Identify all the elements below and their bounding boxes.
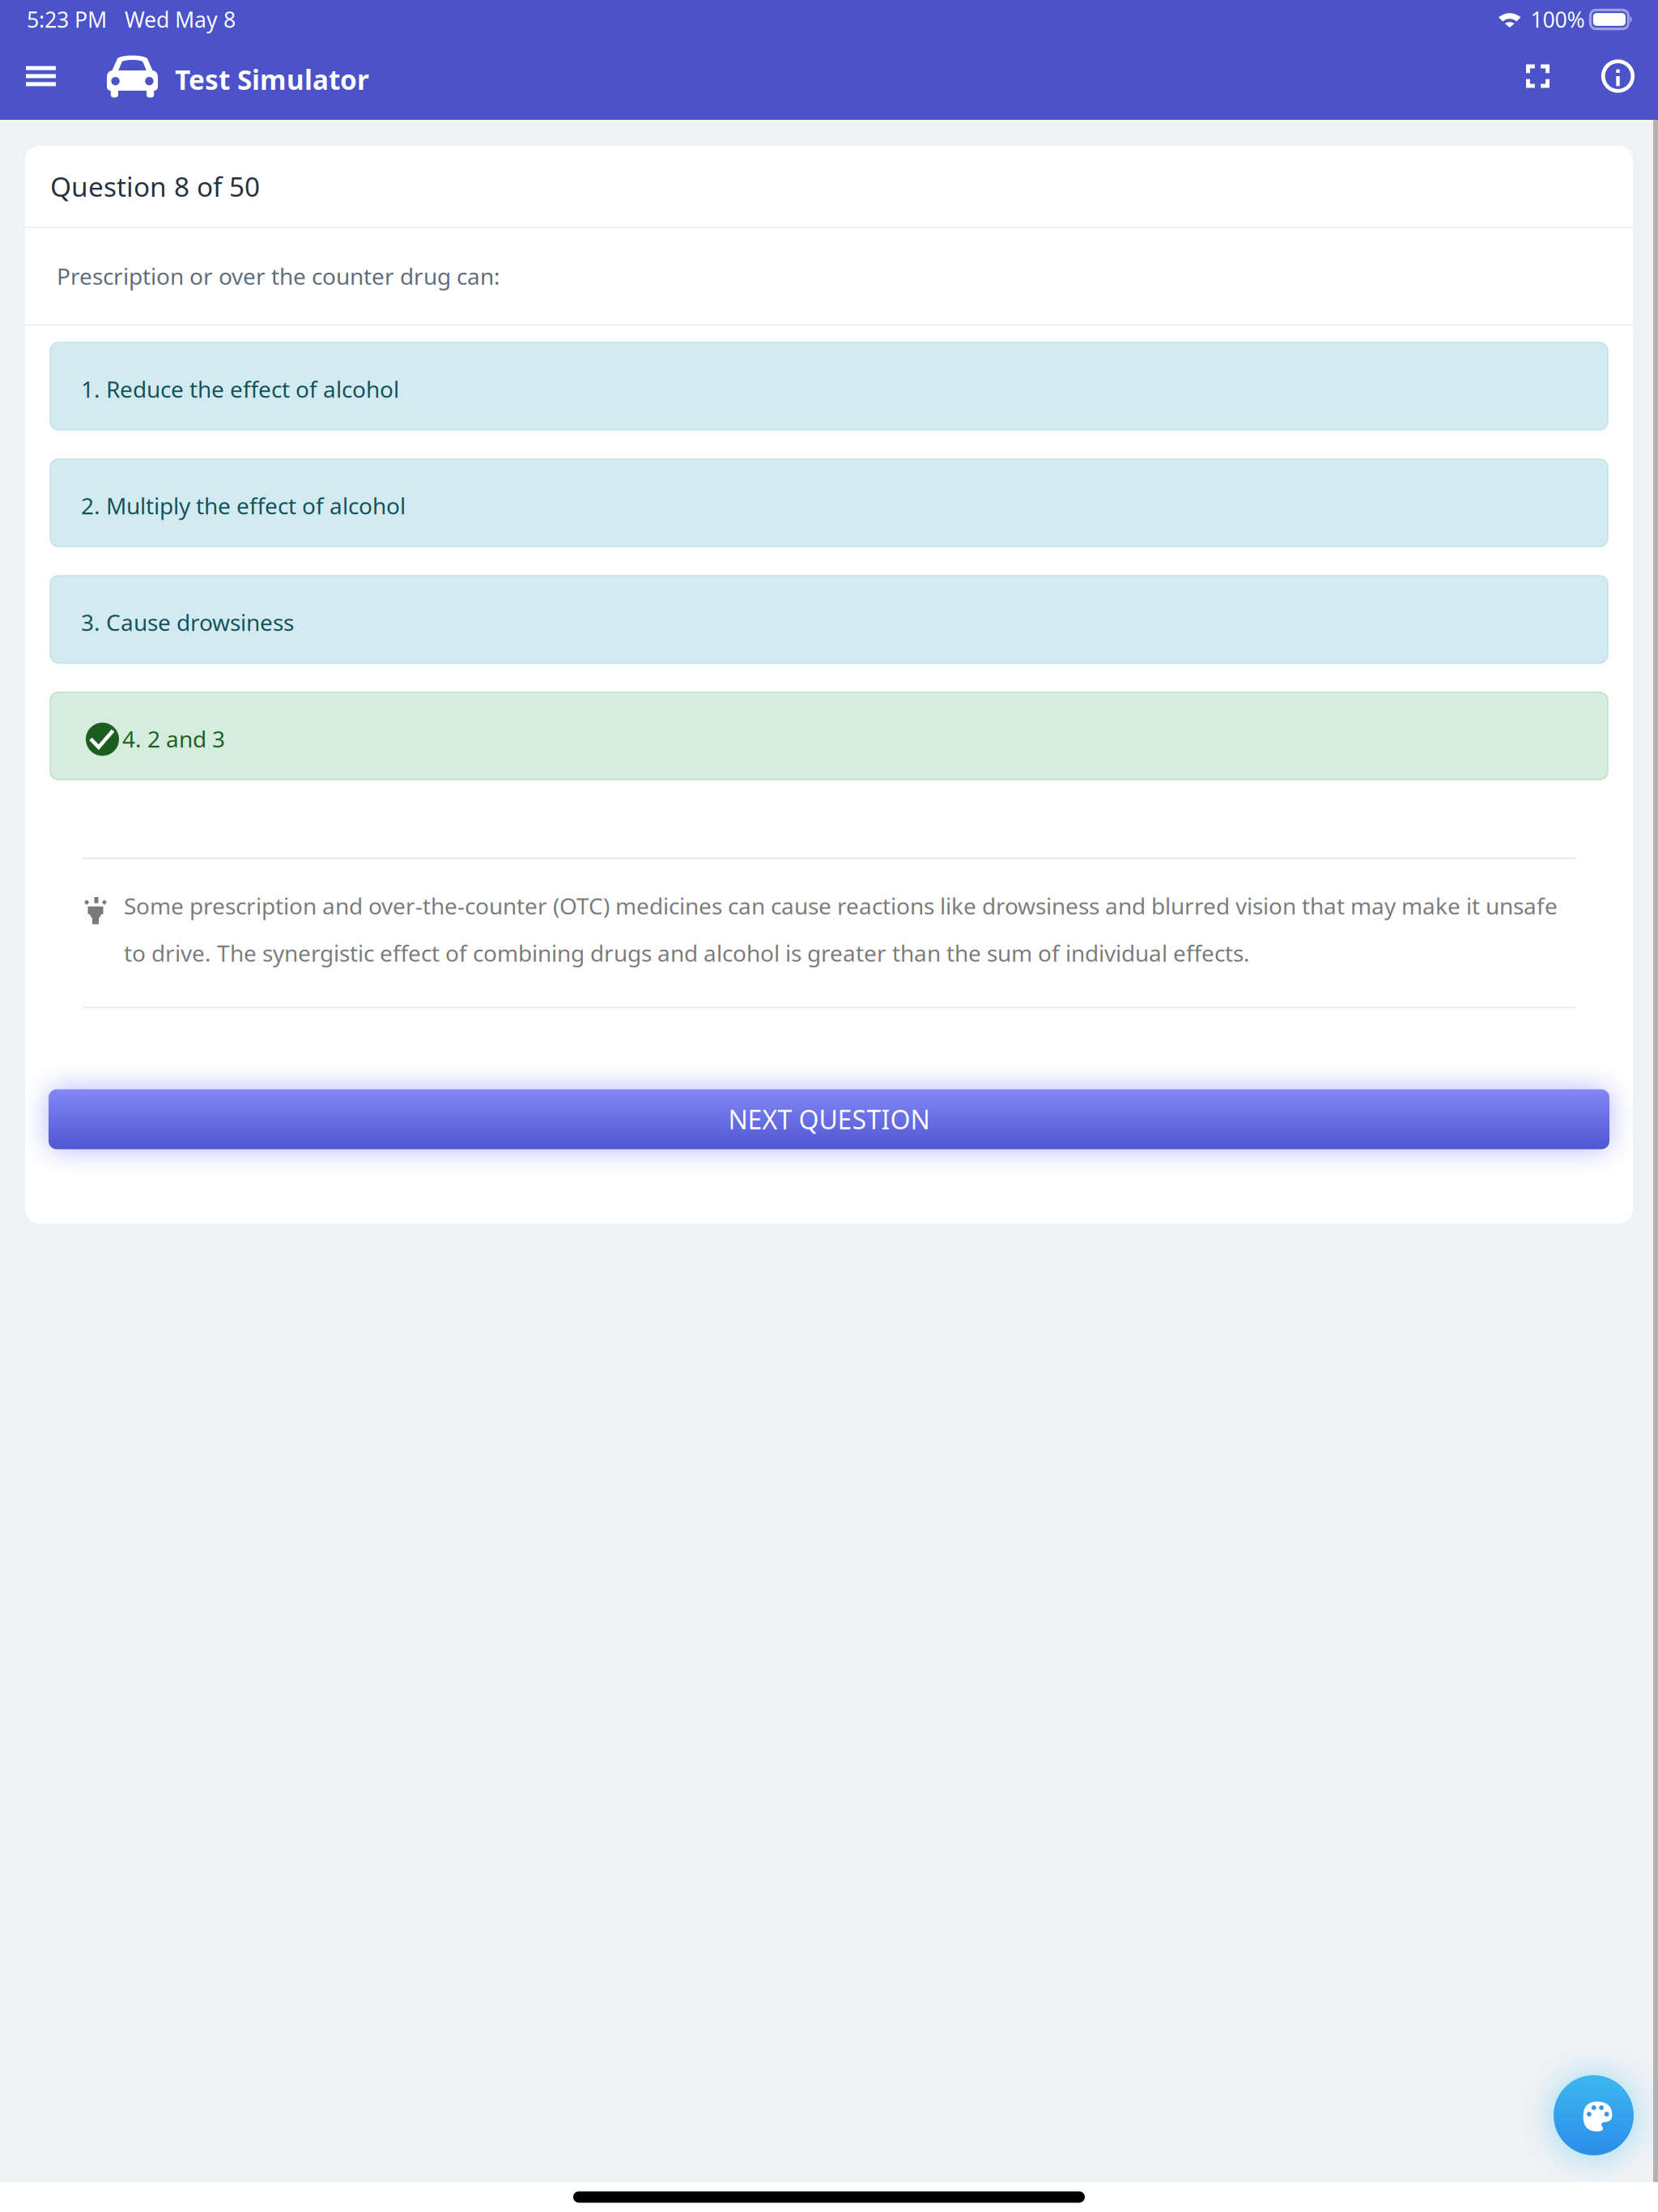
staticText: Question 8 of 50: [50, 168, 260, 204]
staticText: 1. Reduce the effect of alcohol: [81, 374, 399, 404]
button[interactable]: 1. Reduce the effect of alcohol: [50, 342, 1608, 430]
staticText: 100%: [1530, 5, 1585, 34]
staticText: 4. 2 and 3: [122, 724, 225, 754]
staticText: Test Simulator: [175, 61, 369, 97]
staticText: 5:23 PM: [27, 5, 107, 34]
button[interactable]: NEXT QUESTION: [49, 1089, 1609, 1149]
button[interactable]: 2. Multiply the effect of alcohol: [50, 459, 1608, 547]
staticText: Some prescription and over-the-counter (…: [124, 891, 1558, 968]
staticText: 3. Cause drowsiness: [81, 607, 294, 637]
staticText: Wed May 8: [125, 5, 236, 34]
button[interactable]: 4. 2 and 3: [50, 692, 1608, 780]
button[interactable]: Theme: [1554, 2075, 1634, 2155]
button[interactable]: Menu: [13, 51, 69, 107]
staticText: Prescription or over the counter drug ca…: [57, 261, 500, 291]
button[interactable]: Full screen: [1511, 50, 1590, 109]
button[interactable]: Information: [1590, 50, 1646, 109]
staticText: 2. Multiply the effect of alcohol: [81, 491, 406, 521]
button[interactable]: 3. Cause drowsiness: [50, 576, 1608, 663]
staticText: NEXT QUESTION: [728, 1102, 930, 1136]
